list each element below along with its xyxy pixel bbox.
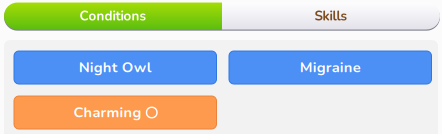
button[interactable]: Migraine (229, 51, 431, 84)
button[interactable]: Conditions (4, 2, 222, 29)
staticText: Conditions (79, 7, 146, 25)
staticText: Night Owl (79, 57, 152, 77)
button[interactable]: Charming (14, 96, 216, 129)
button[interactable]: Skills (222, 2, 440, 29)
button[interactable]: Night Owl (14, 51, 216, 84)
staticText: Charming (73, 102, 141, 122)
staticText: Skills (314, 7, 347, 25)
staticText: Migraine (300, 57, 361, 77)
